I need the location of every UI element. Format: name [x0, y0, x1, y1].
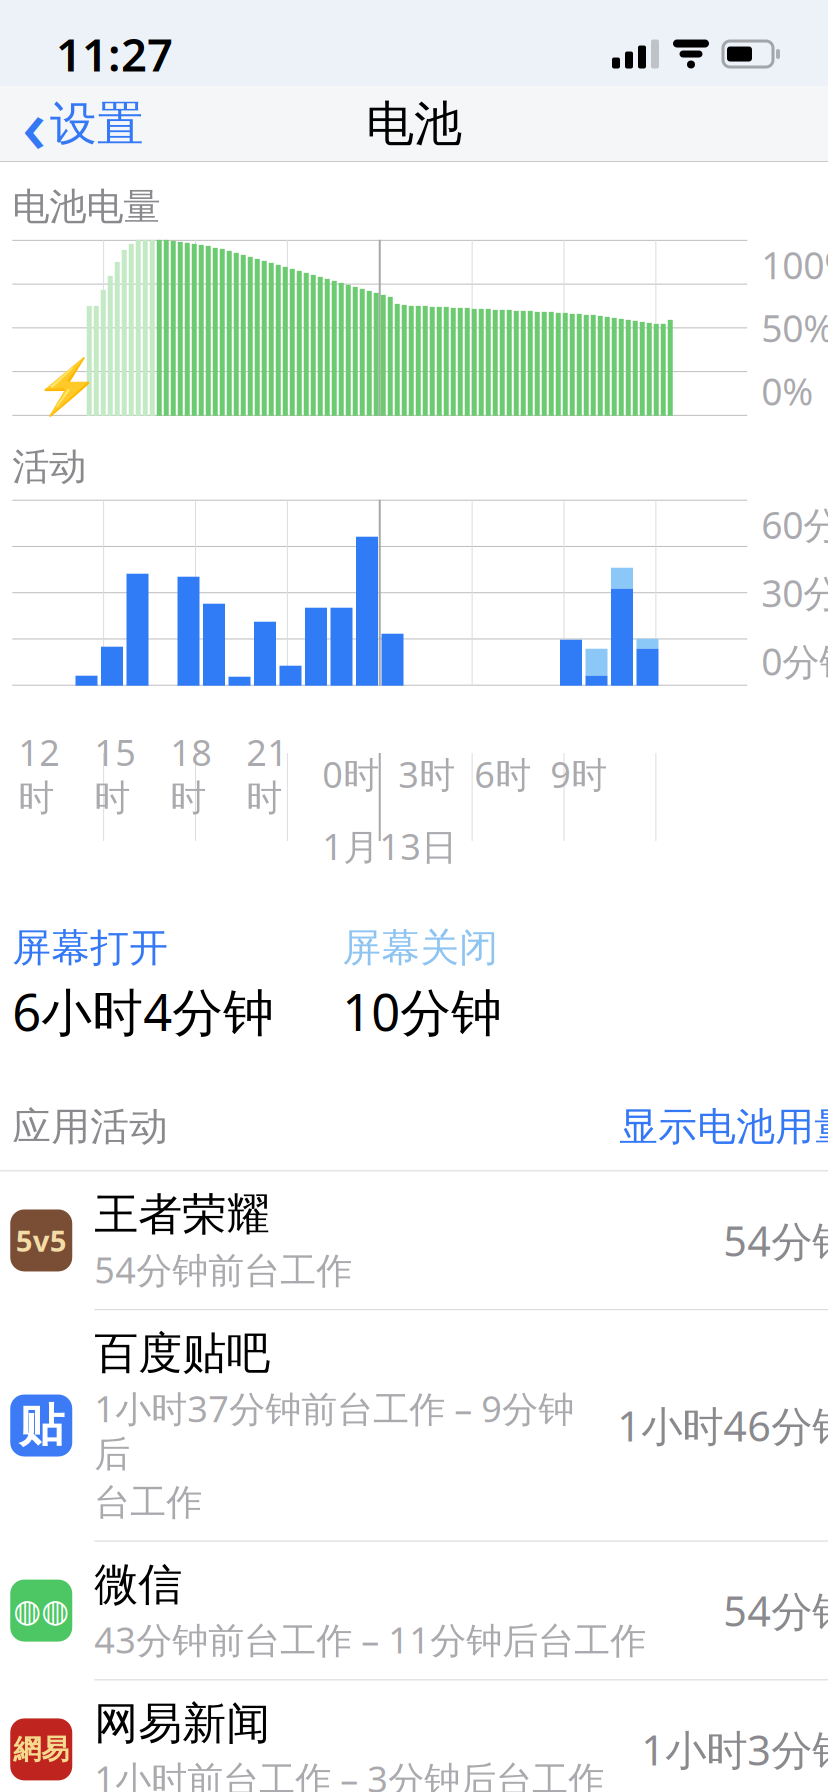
staticText: 应用活动 [12, 1103, 168, 1150]
staticText: 15时 [94, 728, 136, 820]
staticText: 百度贴吧 [94, 1326, 270, 1380]
button[interactable]: ‹ [0, 74, 160, 174]
staticText: 网易新闻 [94, 1696, 270, 1750]
staticText: 0% [761, 366, 813, 416]
staticText: 活动 [12, 444, 86, 490]
staticText: 50% [761, 303, 828, 353]
staticText: 6时 [474, 750, 531, 798]
staticText: 3时 [398, 750, 455, 798]
staticText: 1月13日 [322, 822, 457, 870]
staticText: 60分钟 [761, 500, 828, 549]
staticText: 21时 [246, 728, 288, 820]
staticText: 12时 [18, 728, 60, 820]
staticText: 10分钟 [342, 978, 502, 1045]
staticText: 贴 [19, 1398, 64, 1453]
staticText: 54分钟前台工作 [94, 1246, 352, 1293]
button[interactable]: 贴 [0, 1310, 828, 1542]
button[interactable]: 显示电池用量 [619, 1097, 828, 1156]
staticText: 王者荣耀 [94, 1187, 270, 1241]
staticText: 1小时46分钟 [617, 1398, 828, 1453]
staticText: 11:27 [56, 24, 173, 84]
staticText: 18时 [170, 728, 212, 820]
staticText: 54分钟 [723, 1213, 828, 1268]
staticText: 显示电池用量 [619, 1103, 828, 1150]
staticText: ⚡ [34, 356, 100, 417]
staticText: 5v5 [16, 1221, 67, 1260]
staticText: 網易 [13, 1732, 69, 1767]
staticText: 1小时3分钟 [641, 1722, 828, 1777]
staticText: 台工作 [94, 1480, 202, 1525]
staticText: 54分钟 [723, 1583, 828, 1638]
staticText: ‹ [22, 74, 46, 174]
staticText: 6小时4分钟 [12, 978, 274, 1045]
staticText: 微信 [94, 1558, 182, 1612]
staticText: 9时 [550, 750, 607, 798]
button[interactable]: ◍◍ [0, 1542, 828, 1680]
staticText: 电池 [366, 94, 462, 153]
staticText: 设置 [50, 95, 144, 153]
staticText: 1小时前台工作 – 3分钟后台工作 [94, 1754, 604, 1792]
staticText: 屏幕关闭 [342, 924, 498, 972]
staticText: 屏幕打开 [12, 924, 168, 972]
staticText: ◍◍ [13, 1592, 69, 1629]
staticText: 30分钟 [761, 568, 828, 617]
staticText: 0时 [322, 750, 379, 798]
staticText: 电池电量 [12, 184, 160, 230]
button[interactable]: 5v5 [0, 1171, 828, 1310]
button[interactable]: 網易 [0, 1680, 828, 1792]
staticText: 100% [761, 240, 828, 289]
staticText: 0分钟 [761, 636, 828, 686]
staticText: 43分钟前台工作 – 11分钟后台工作 [94, 1616, 646, 1663]
staticText: 1小时37分钟前台工作 – 9分钟后 [94, 1384, 574, 1476]
